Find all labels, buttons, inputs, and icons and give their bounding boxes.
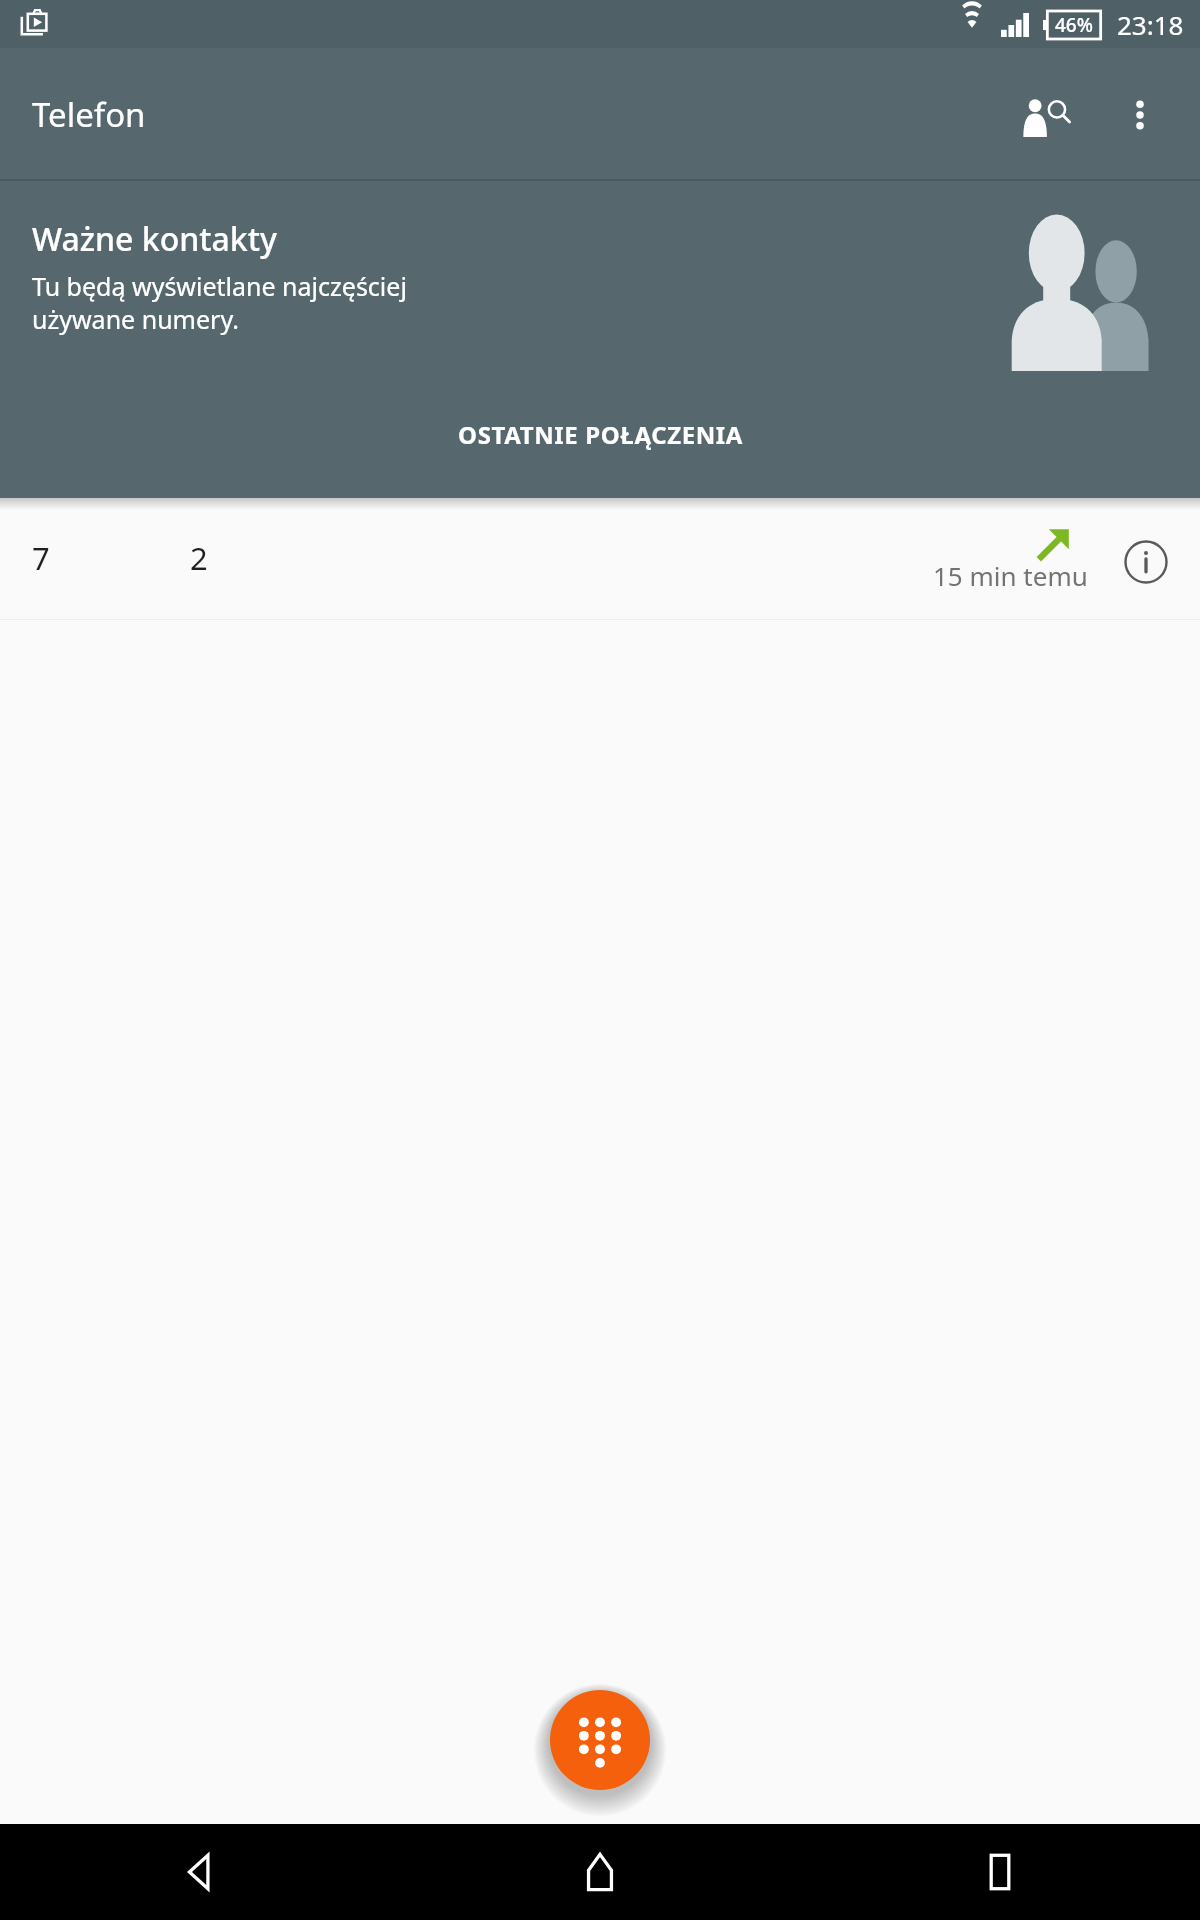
button[interactable]: OSTATNIE POŁĄCZENIA (0, 371, 1200, 498)
button[interactable]: Ostatnie aplikacje (800, 1824, 1200, 1920)
button[interactable]: Więcej opcji (1096, 71, 1184, 159)
button[interactable]: Klawiatura (550, 1690, 650, 1790)
staticText: 15 min temu (933, 558, 1088, 593)
staticText: 23:18 (1117, 7, 1184, 42)
button[interactable]: Wstecz (0, 1824, 400, 1920)
button[interactable]: Ważne kontakty (0, 181, 1200, 371)
button[interactable]: Ekran główny (400, 1824, 800, 1920)
staticText: 46% (1055, 12, 1093, 38)
staticText: Tu będą wyświetlane najczęściej używane … (32, 269, 407, 336)
button[interactable]: Szukaj kontaktów (1000, 67, 1096, 163)
staticText: 7 (32, 537, 50, 579)
staticText: Ważne kontakty (32, 217, 277, 261)
button[interactable]: Szczegóły połączenia (1114, 530, 1178, 594)
staticText: Telefon (32, 92, 146, 137)
staticText: OSTATNIE POŁĄCZENIA (458, 418, 743, 451)
staticText: 2 (190, 537, 208, 579)
button[interactable]: 7 (0, 510, 1200, 620)
